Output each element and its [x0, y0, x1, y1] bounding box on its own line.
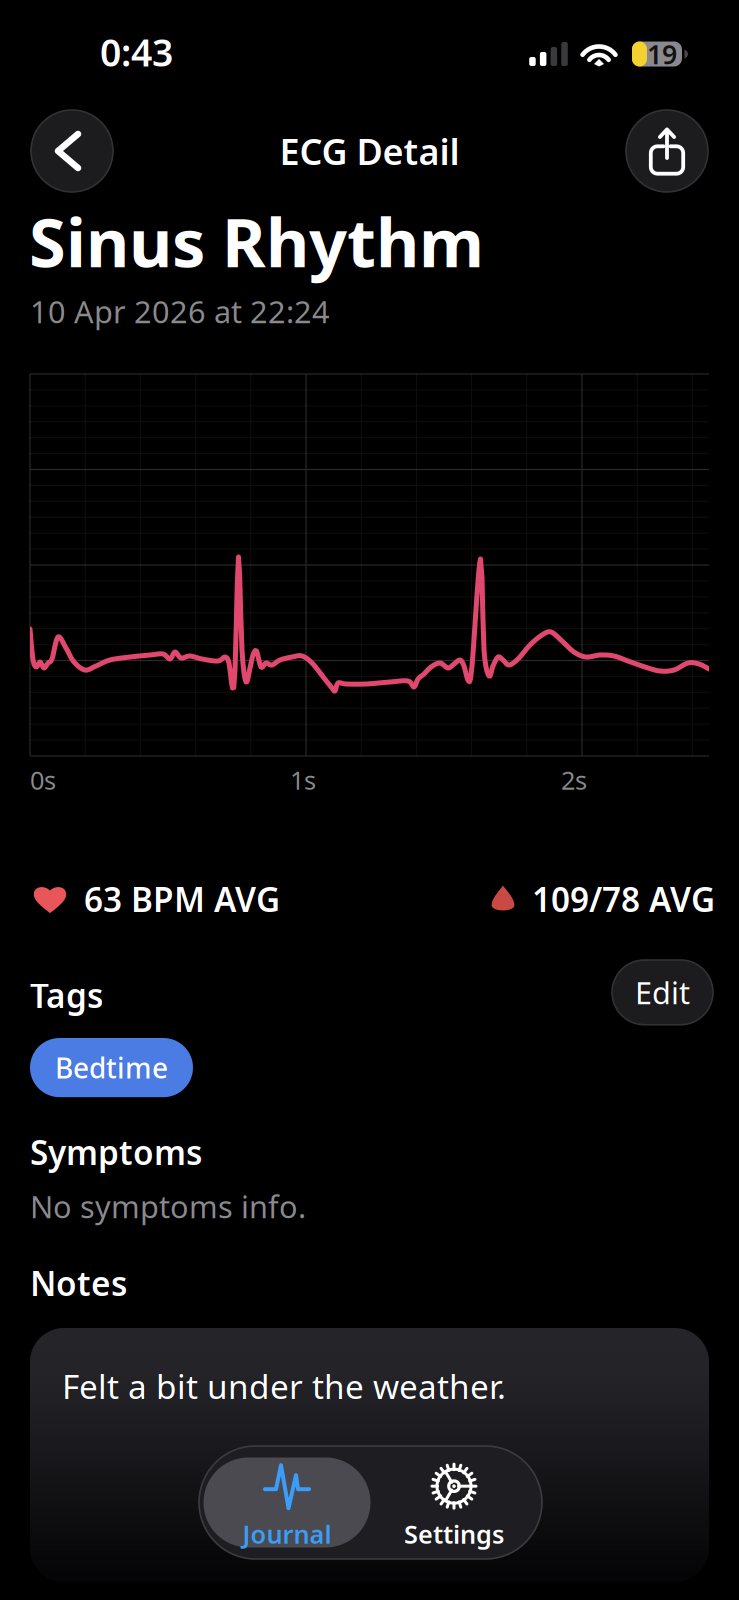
staticText: No symptoms info.: [30, 1186, 306, 1227]
staticText: Tags: [30, 973, 103, 1017]
button[interactable]: Bedtime: [30, 1038, 193, 1097]
staticText: Sinus Rhythm: [29, 197, 484, 285]
staticText: Bedtime: [55, 1049, 168, 1086]
staticText: Settings: [404, 1517, 504, 1551]
staticText: 2s: [561, 763, 587, 797]
staticText: 63 BPM AVG: [84, 877, 280, 921]
staticText: 19: [647, 36, 677, 72]
button[interactable]: Edit: [612, 960, 713, 1025]
staticText: Journal: [242, 1517, 331, 1551]
staticText: 10 Apr 2026 at 22:24: [30, 291, 330, 332]
staticText: 109/78 AVG: [532, 877, 715, 921]
staticText: 0s: [30, 763, 56, 797]
button[interactable]: Settings: [370, 1457, 537, 1547]
staticText: Felt a bit under the weather.: [62, 1364, 506, 1408]
staticText: ECG Detail: [279, 127, 459, 175]
button[interactable]: Journal: [203, 1457, 370, 1547]
staticText: 0:43: [100, 27, 173, 77]
staticText: Edit: [635, 972, 690, 1013]
button[interactable]: Share: [626, 110, 708, 192]
staticText: Symptoms: [30, 1130, 202, 1174]
staticText: 1s: [290, 763, 316, 797]
staticText: Notes: [30, 1261, 127, 1305]
button[interactable]: Back: [31, 110, 113, 192]
